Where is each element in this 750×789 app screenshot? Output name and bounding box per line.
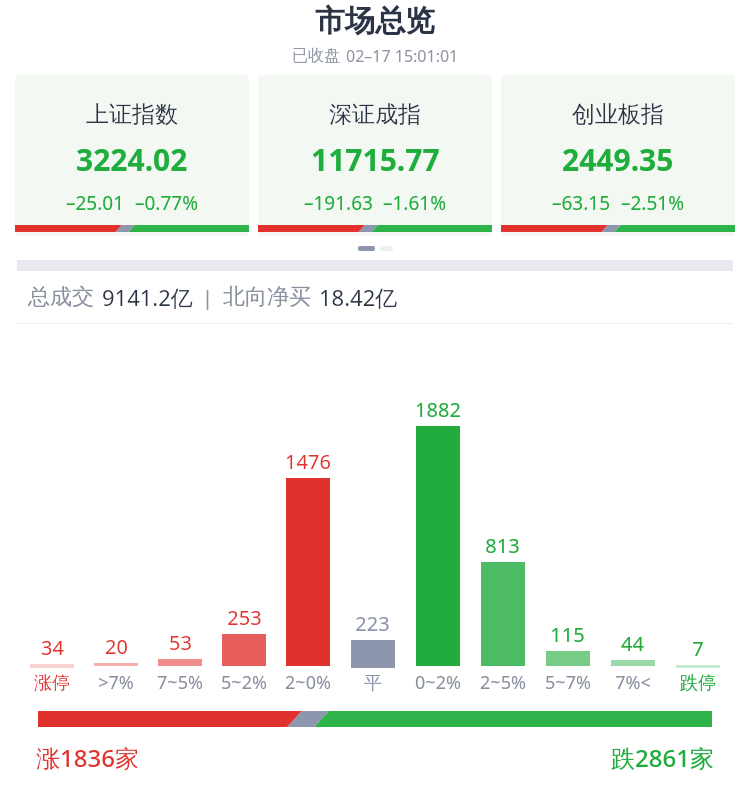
staticText: –0.77% [135, 190, 198, 216]
staticText: 1882 [415, 396, 461, 423]
button[interactable]: 深证成指 [258, 75, 492, 236]
staticText: 44 [621, 630, 644, 657]
staticText: 02–17 15:01:01 [346, 45, 459, 67]
staticText: 253 [227, 604, 262, 631]
button[interactable]: 53 [148, 334, 212, 703]
staticText: 1476 [285, 448, 331, 475]
staticText: 已收盘 [292, 46, 340, 66]
button[interactable]: 34 [20, 334, 84, 703]
button[interactable]: 涨跌家数比例 [38, 711, 712, 727]
staticText: 7%< [615, 670, 651, 695]
staticText: | [202, 284, 214, 311]
staticText: 53 [169, 629, 192, 656]
staticText: –25.01 [66, 190, 125, 216]
staticText: 5~7% [545, 670, 591, 695]
staticText: –63.15 [552, 190, 611, 216]
staticText: 5~2% [221, 670, 267, 695]
staticText: 北向净买 [223, 283, 311, 311]
button[interactable]: 44 [600, 334, 665, 703]
staticText: 2449.35 [562, 139, 674, 180]
button[interactable]: 上证指数 [15, 75, 249, 236]
staticText: 涨停 [34, 672, 70, 695]
staticText: 创业板指 [572, 100, 664, 129]
staticText: 3224.02 [76, 139, 188, 180]
button[interactable]: 创业板指 [501, 75, 735, 236]
staticText: >7% [98, 670, 134, 695]
staticText: 跌停 [680, 672, 716, 695]
button[interactable]: 115 [535, 334, 600, 703]
staticText: 34 [41, 634, 64, 661]
staticText: 9141.2亿 [102, 282, 193, 312]
staticText: 813 [485, 532, 520, 559]
staticText: 7~5% [157, 670, 203, 695]
staticText: 115 [550, 621, 585, 648]
staticText: 跌2861家 [611, 741, 714, 774]
staticText: –191.63 [304, 190, 373, 216]
button[interactable]: 813 [470, 334, 535, 703]
staticText: 2~5% [480, 670, 526, 695]
button[interactable]: 7 [665, 334, 730, 703]
button[interactable]: 223 [340, 334, 405, 703]
button[interactable]: 20 [84, 334, 148, 703]
button[interactable]: 1476 [276, 334, 340, 703]
staticText: 平 [364, 672, 382, 695]
staticText: 18.42亿 [319, 282, 398, 312]
staticText: 223 [355, 610, 390, 637]
staticText: 涨1836家 [36, 741, 139, 774]
staticText: –1.61% [383, 190, 446, 216]
button[interactable]: 1882 [405, 334, 470, 703]
staticText: 0~2% [415, 670, 461, 695]
staticText: 11715.77 [311, 139, 440, 180]
staticText: –2.51% [621, 190, 684, 216]
staticText: 上证指数 [86, 100, 178, 129]
staticText: 7 [692, 635, 704, 662]
button[interactable]: 253 [212, 334, 276, 703]
staticText: 深证成指 [329, 100, 421, 129]
staticText: 总成交 [28, 283, 94, 311]
staticText: 市场总览 [315, 2, 435, 40]
staticText: 2~0% [285, 670, 331, 695]
staticText: 20 [105, 633, 128, 660]
